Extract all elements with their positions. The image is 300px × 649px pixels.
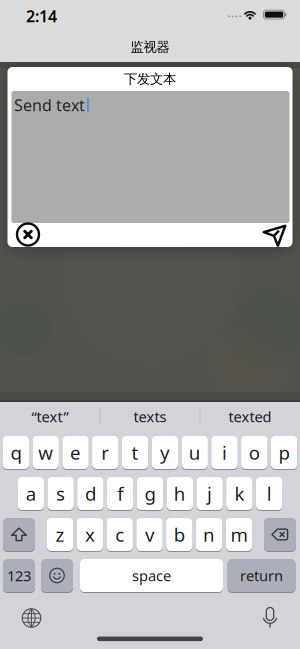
staticText: z (56, 522, 65, 547)
staticText: q (10, 440, 21, 465)
staticText: 下发文本 (124, 71, 176, 87)
staticText: s (56, 481, 65, 506)
staticText: 监视器 (130, 39, 169, 55)
staticText: a (26, 481, 36, 506)
button[interactable]: e (62, 436, 89, 469)
button[interactable]: return (227, 559, 295, 592)
staticText: j (207, 481, 212, 506)
button[interactable]: Delete (264, 518, 296, 551)
staticText: b (174, 522, 185, 547)
button[interactable]: n (196, 518, 222, 551)
staticText: w (38, 440, 53, 465)
staticText: o (249, 440, 260, 465)
button[interactable]: j (196, 477, 223, 510)
button[interactable]: texted (200, 402, 300, 431)
staticText: d (85, 481, 96, 506)
staticText: n (203, 522, 215, 547)
staticText: f (117, 481, 123, 506)
button[interactable]: r (92, 436, 118, 469)
staticText: 123 (7, 566, 31, 585)
staticText: h (174, 481, 186, 506)
button[interactable]: y (152, 436, 178, 469)
staticText: t (132, 440, 139, 465)
button[interactable]: m (226, 518, 252, 551)
button[interactable]: f (107, 477, 133, 510)
button[interactable]: p (271, 436, 297, 469)
button[interactable]: 123 (3, 559, 35, 592)
button[interactable]: t (122, 436, 148, 469)
button[interactable]: “text” (0, 402, 100, 431)
staticText: c (115, 522, 124, 547)
button[interactable]: Dictate (262, 606, 278, 629)
button[interactable]: l (256, 477, 282, 510)
staticText: Send text (14, 94, 85, 116)
button[interactable]: d (77, 477, 104, 510)
button[interactable]: Next keyboard (21, 608, 41, 628)
button[interactable]: q (3, 436, 29, 469)
staticText: r (101, 440, 109, 465)
staticText: e (70, 440, 81, 465)
button[interactable]: v (136, 518, 163, 551)
button[interactable]: Text input (11, 91, 289, 223)
button[interactable]: i (211, 436, 238, 469)
staticText: g (144, 481, 155, 506)
staticText: p (279, 440, 290, 465)
button[interactable]: o (241, 436, 267, 469)
button[interactable]: w (32, 436, 59, 469)
button[interactable]: g (137, 477, 163, 510)
staticText: m (230, 522, 247, 547)
staticText: v (145, 522, 154, 547)
button[interactable]: space (80, 559, 223, 592)
button[interactable]: k (226, 477, 253, 510)
staticText: “text” (31, 407, 68, 426)
staticText: return (240, 566, 283, 585)
button[interactable]: h (167, 477, 193, 510)
button[interactable]: Emoji (41, 559, 73, 592)
button[interactable]: a (18, 477, 44, 510)
staticText: i (222, 440, 227, 465)
button[interactable]: texts (100, 402, 200, 431)
button[interactable]: Shift (3, 518, 35, 551)
button[interactable]: x (77, 518, 103, 551)
button[interactable]: b (166, 518, 192, 551)
button[interactable]: u (181, 436, 208, 469)
staticText: x (85, 522, 95, 547)
staticText: texts (133, 407, 166, 426)
button[interactable]: c (106, 518, 133, 551)
staticText: y (160, 440, 170, 465)
button[interactable]: Send (260, 222, 286, 246)
staticText: texted (228, 407, 271, 426)
button[interactable]: s (47, 477, 74, 510)
staticText: l (267, 481, 272, 506)
button[interactable]: z (47, 518, 73, 551)
staticText: k (234, 481, 244, 506)
button[interactable]: Close (16, 222, 40, 246)
staticText: 2:14 (26, 5, 57, 27)
staticText: u (189, 440, 201, 465)
staticText: space (132, 566, 171, 585)
